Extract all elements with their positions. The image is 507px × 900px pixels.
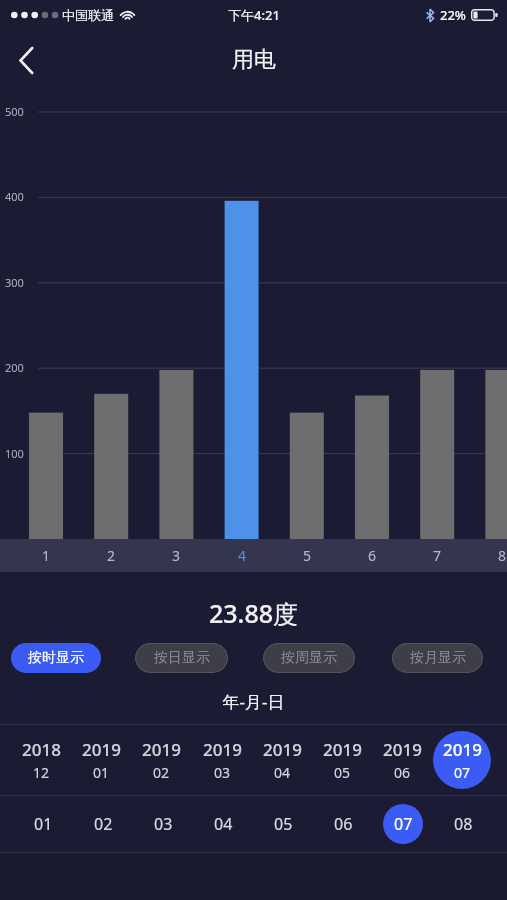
staticText: 01 <box>34 813 53 835</box>
button[interactable]: 6 <box>352 539 392 572</box>
staticText: 4 <box>238 546 247 565</box>
button[interactable]: 7 <box>417 539 457 572</box>
staticText: 22% <box>440 6 466 24</box>
button[interactable]: 05 <box>263 804 303 844</box>
staticText: 3 <box>172 546 181 565</box>
button[interactable]: 2019 <box>373 731 431 789</box>
staticText: 中国联通 <box>62 7 114 23</box>
button[interactable]: 04 <box>203 804 243 844</box>
staticText: 2019 <box>383 738 422 761</box>
button[interactable]: 2 <box>91 539 131 572</box>
staticText: 1 <box>42 546 51 565</box>
staticText: 按时显示 <box>28 649 84 667</box>
staticText: 07 <box>394 813 413 835</box>
button[interactable]: 1 <box>26 539 66 572</box>
button[interactable]: 按时显示 <box>11 643 101 673</box>
staticText: 05 <box>274 813 293 835</box>
button[interactable]: 2018 <box>12 731 70 789</box>
button[interactable]: 5 <box>287 539 327 572</box>
staticText: 04 <box>274 763 291 782</box>
staticText: 12 <box>33 763 50 782</box>
staticText: 100 <box>5 446 24 461</box>
button[interactable]: 08 <box>443 804 483 844</box>
button[interactable]: 01 <box>23 804 63 844</box>
staticText: 03 <box>154 813 173 835</box>
button[interactable]: 2019 <box>253 731 311 789</box>
staticText: 07 <box>454 763 471 782</box>
button[interactable]: 07 <box>383 804 423 844</box>
staticText: 2019 <box>263 738 302 761</box>
button[interactable]: 按月显示 <box>392 643 483 673</box>
staticText: 2019 <box>142 738 181 761</box>
staticText: 2 <box>107 546 116 565</box>
staticText: 用电 <box>232 46 276 74</box>
staticText: 03 <box>214 763 231 782</box>
button[interactable]: 2019 <box>72 731 130 789</box>
staticText: 06 <box>334 813 353 835</box>
staticText: 01 <box>93 763 110 782</box>
button[interactable]: 2019 <box>313 731 371 789</box>
staticText: 2019 <box>443 738 482 761</box>
staticText: 按日显示 <box>154 649 210 667</box>
staticText: 2019 <box>82 738 121 761</box>
staticText: 5 <box>303 546 312 565</box>
staticText: 02 <box>153 763 170 782</box>
staticText: 04 <box>214 813 233 835</box>
staticText: 2018 <box>22 738 61 761</box>
staticText: 按月显示 <box>410 649 466 667</box>
button[interactable]: Back <box>0 34 52 86</box>
button[interactable]: 3 <box>156 539 196 572</box>
staticText: 8 <box>498 546 507 565</box>
staticText: 400 <box>5 189 24 204</box>
button[interactable]: 2019 <box>193 731 251 789</box>
button[interactable]: 02 <box>83 804 123 844</box>
staticText: 下午4:21 <box>228 6 280 24</box>
staticText: 2019 <box>203 738 242 761</box>
button[interactable]: 8 <box>482 539 507 572</box>
staticText: 05 <box>334 763 351 782</box>
button[interactable]: 03 <box>143 804 183 844</box>
staticText: 08 <box>454 813 473 835</box>
staticText: 23.88度 <box>0 596 507 630</box>
staticText: 6 <box>368 546 377 565</box>
button[interactable]: 按周显示 <box>263 643 355 673</box>
staticText: 2019 <box>323 738 362 761</box>
button[interactable]: 按日显示 <box>135 643 228 673</box>
staticText: 按周显示 <box>281 649 337 667</box>
button[interactable]: 2019 <box>433 731 491 789</box>
staticText: 年-月-日 <box>0 690 507 713</box>
button[interactable]: 2019 <box>132 731 190 789</box>
staticText: 500 <box>5 104 24 119</box>
staticText: 02 <box>94 813 113 835</box>
staticText: 200 <box>5 360 24 375</box>
staticText: 300 <box>5 275 24 290</box>
button[interactable]: 06 <box>323 804 363 844</box>
staticText: 06 <box>394 763 411 782</box>
button[interactable]: 4 <box>222 539 262 572</box>
staticText: 7 <box>433 546 442 565</box>
